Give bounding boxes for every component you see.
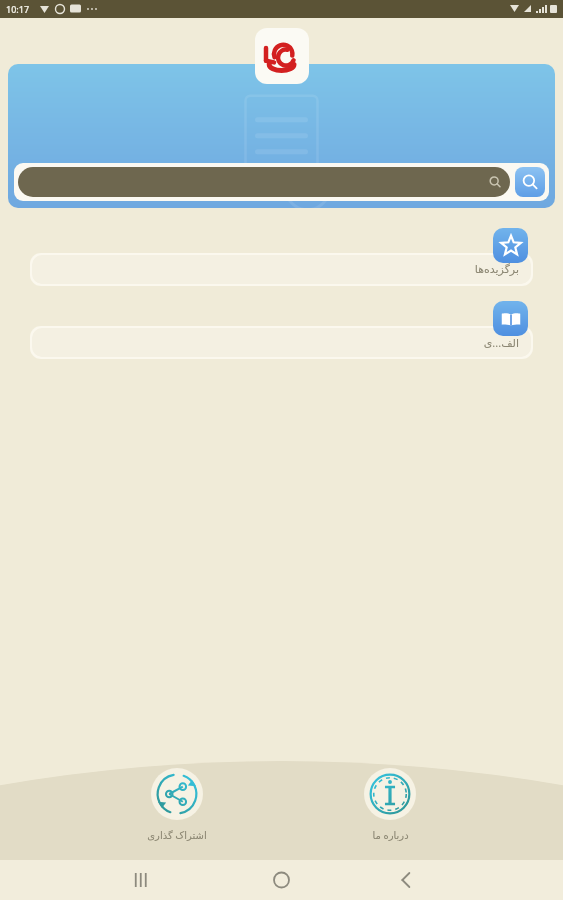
staticText: اشتراک گذاری	[147, 828, 207, 842]
button[interactable]: برگزیده‌ها	[32, 255, 531, 284]
button[interactable]	[18, 167, 510, 197]
button[interactable]: برگزیده‌ها	[493, 228, 528, 263]
staticText: الف...ی	[483, 335, 519, 350]
button[interactable]: درباره ما	[354, 768, 426, 842]
button[interactable]: لوگو	[255, 28, 309, 84]
button[interactable]: الف...ی	[493, 301, 528, 336]
staticText: برگزیده‌ها	[474, 263, 519, 276]
staticText: درباره ما	[372, 828, 409, 842]
button[interactable]: اشتراک گذاری	[137, 768, 217, 842]
button[interactable]: جستجو	[515, 167, 545, 197]
staticText: 10:17	[6, 3, 30, 15]
button[interactable]: الف...ی	[32, 328, 531, 357]
